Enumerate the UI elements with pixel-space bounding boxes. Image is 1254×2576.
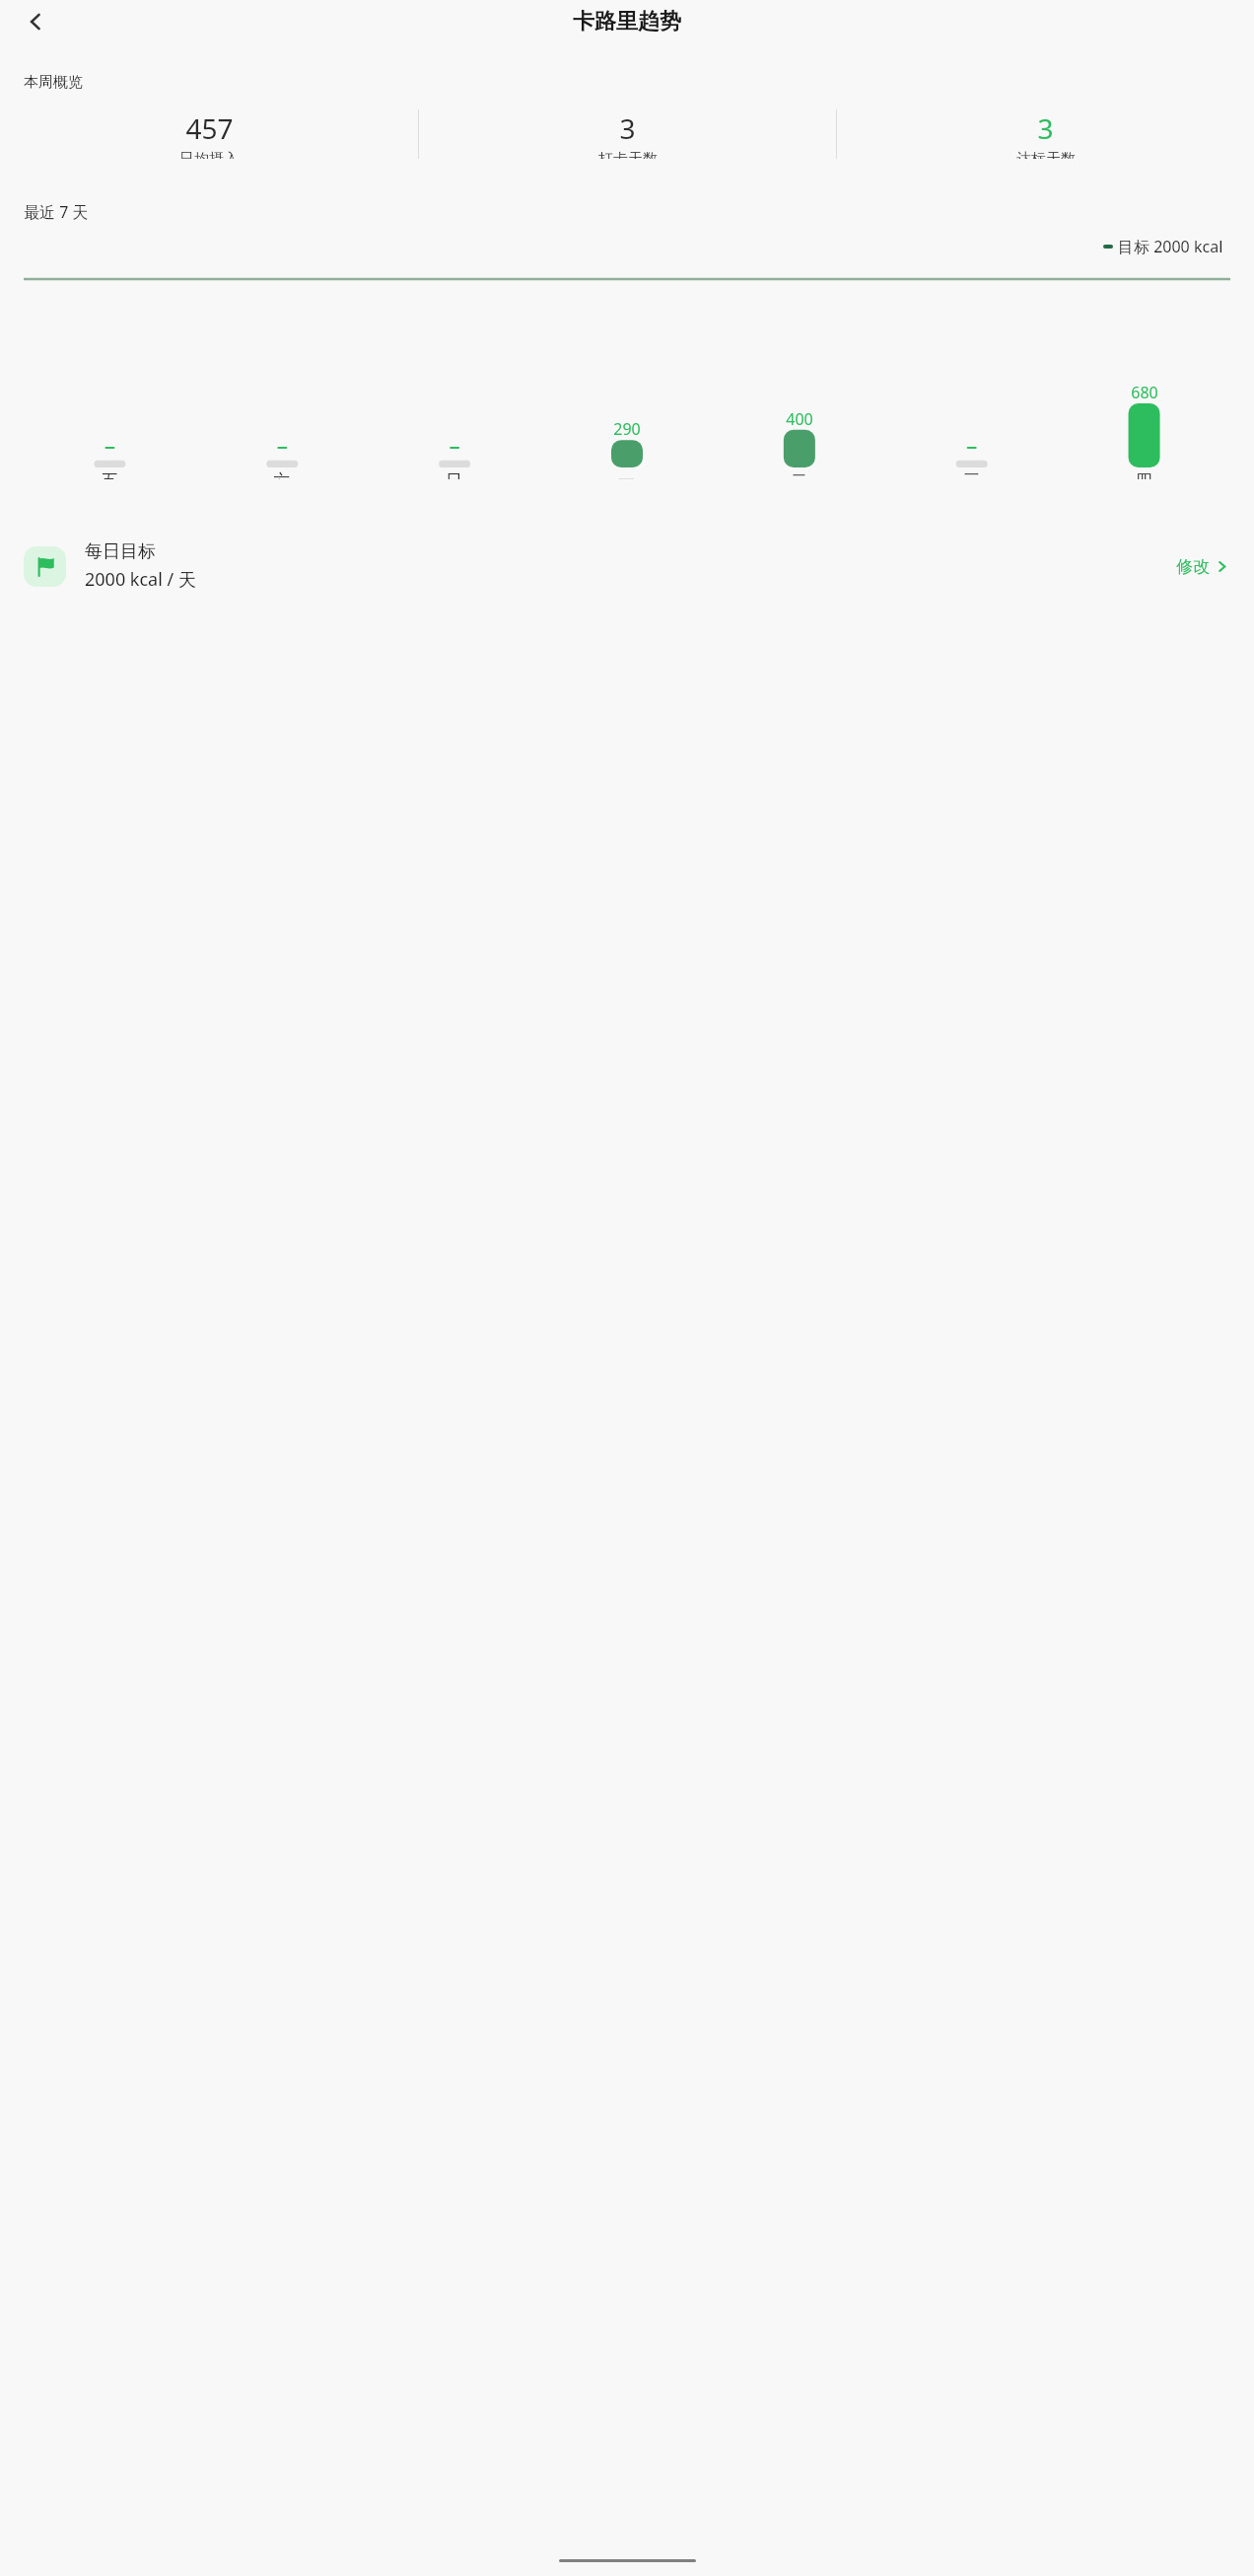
- staticText: 680: [1131, 382, 1158, 403]
- staticText: 目标 2000 kcal: [1118, 236, 1223, 257]
- staticText: 290: [613, 418, 641, 440]
- staticText: 打卡天数: [598, 150, 658, 159]
- staticText: 六: [273, 470, 290, 479]
- staticText: 每日目标: [85, 540, 156, 563]
- staticText: 四: [1136, 470, 1152, 479]
- staticText: 400: [786, 408, 813, 430]
- button[interactable]: 3: [837, 109, 1254, 159]
- staticText: 457: [185, 109, 234, 147]
- button[interactable]: 3: [419, 109, 836, 159]
- staticText: 五: [102, 470, 118, 479]
- staticText: 3: [619, 109, 636, 147]
- button[interactable]: 457: [0, 109, 418, 159]
- staticText: 修改: [1176, 556, 1210, 577]
- staticText: 日均摄入: [179, 150, 239, 159]
- staticText: 达标天数: [1016, 150, 1076, 159]
- staticText: 3: [1037, 109, 1054, 147]
- staticText: 三: [963, 470, 980, 479]
- staticText: 卡路里趋势: [573, 8, 681, 36]
- staticText: 日: [446, 470, 462, 479]
- staticText: 二: [791, 470, 807, 479]
- staticText: 本周概览: [24, 73, 83, 92]
- button[interactable]: 每日目标: [0, 536, 1254, 597]
- staticText: 2000 kcal / 天: [85, 567, 196, 592]
- button[interactable]: 修改: [1176, 556, 1228, 577]
- button[interactable]: Back: [12, 0, 59, 42]
- staticText: 最近 7 天: [24, 201, 89, 223]
